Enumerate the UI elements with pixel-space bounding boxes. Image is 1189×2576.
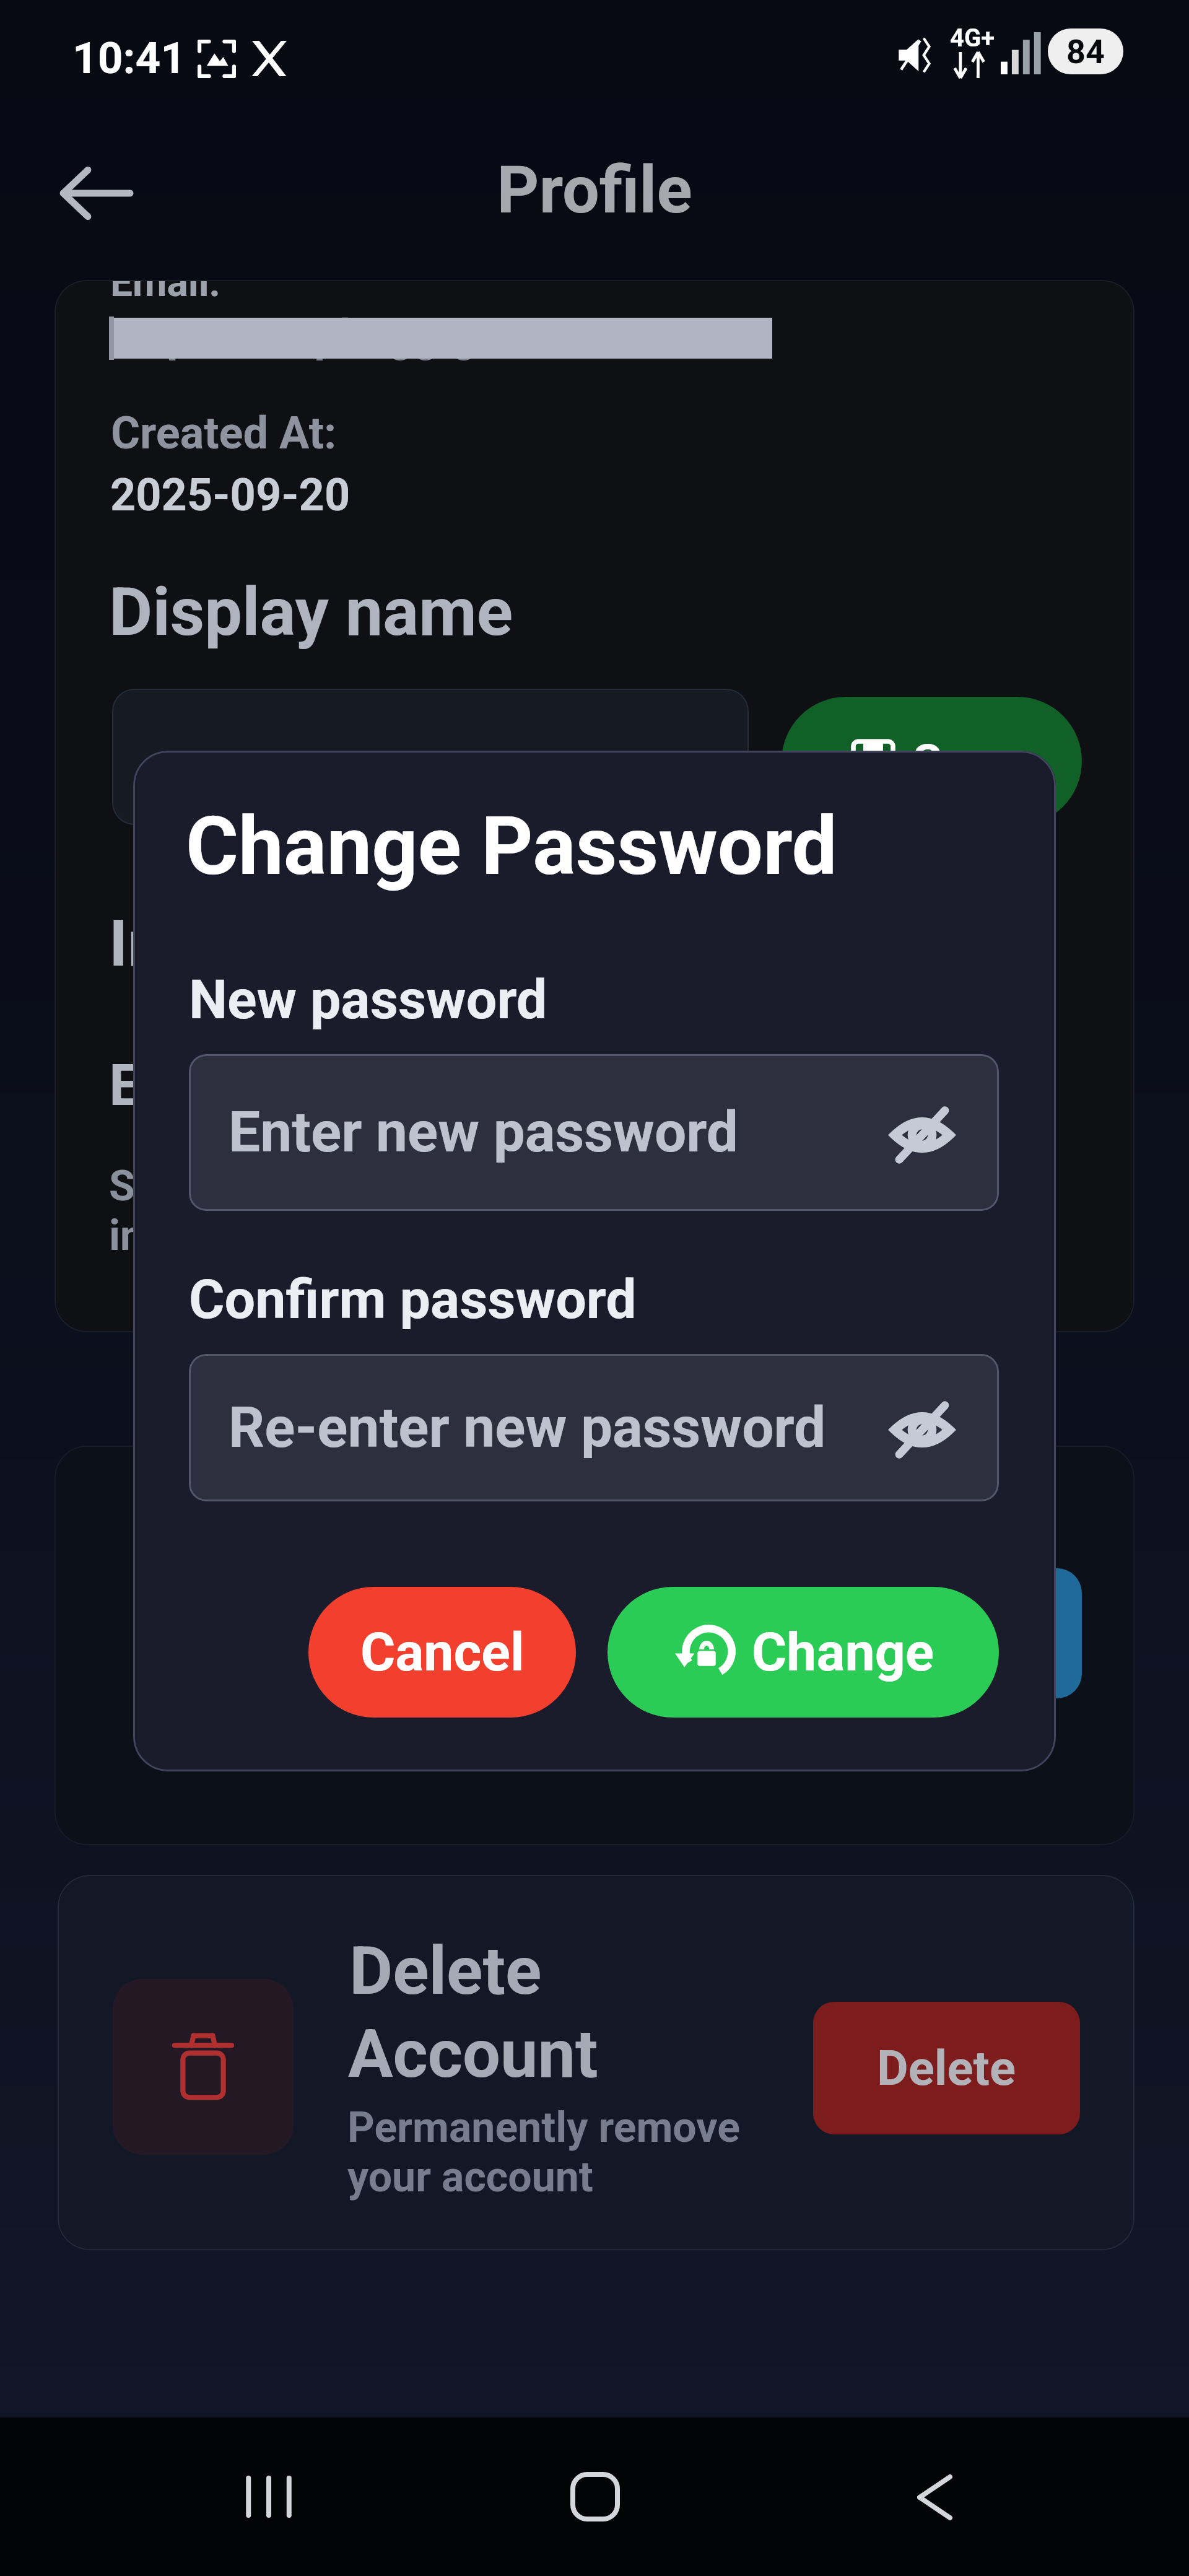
other: Show password (894, 1400, 951, 1455)
staticText: 10:41 (72, 32, 186, 84)
staticText: Permanently remove your account (347, 2103, 740, 2202)
staticText: Change Password (186, 799, 837, 893)
button[interactable] (816, 1568, 1082, 1698)
staticText: 4G+ (950, 24, 995, 53)
button[interactable]: Delete (813, 2002, 1080, 2134)
button[interactable]: Re-enter new password (189, 1354, 999, 1501)
other: Home (573, 2474, 617, 2519)
staticText: Delete (349, 1932, 542, 2011)
other: Delete (173, 2032, 233, 2102)
button[interactable]: Enter new password (189, 1054, 999, 1211)
staticText: 84 (1066, 32, 1105, 71)
staticText: Email (109, 1052, 251, 1119)
staticText: Profile (0, 152, 1189, 229)
other: Back (62, 168, 130, 218)
staticText: Email: (110, 280, 220, 306)
staticText: Save (913, 734, 1016, 789)
staticText: Secure your account in one place (109, 1161, 497, 1260)
staticText: Display name (109, 573, 513, 652)
staticText: Cancel (360, 1621, 525, 1683)
staticText: New password (189, 967, 547, 1031)
staticText: Confirm password (189, 1267, 637, 1331)
button[interactable]: Save (782, 697, 1082, 826)
staticText: Delete (877, 2040, 1016, 2097)
staticText: 2025-09-20 (110, 469, 351, 521)
other: Back (918, 2474, 950, 2520)
other: Recents (245, 2478, 293, 2515)
staticText: shp.example.gg.g (119, 310, 477, 362)
staticText: Enter new password (229, 1099, 894, 1166)
staticText: Info (109, 906, 224, 982)
other: Show password (894, 1106, 951, 1160)
staticText: Created At: (111, 407, 337, 459)
staticText: Change (752, 1621, 934, 1683)
staticText: Re-enter new password (229, 1395, 894, 1461)
button[interactable]: Change (608, 1587, 999, 1718)
button[interactable]: Cancel (308, 1587, 576, 1718)
staticText: Account (348, 2015, 598, 2094)
